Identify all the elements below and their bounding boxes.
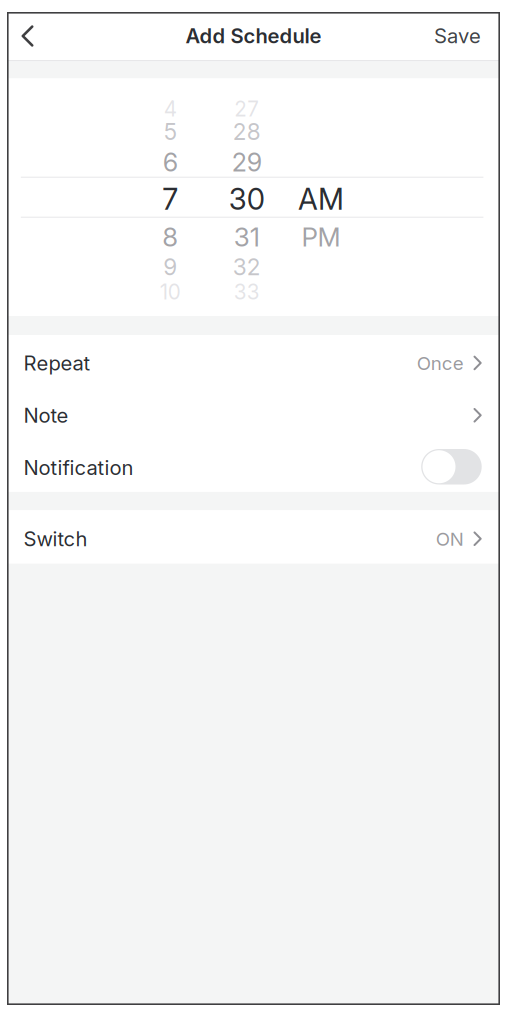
staticText: 27: [234, 96, 259, 121]
staticText: 33: [234, 279, 260, 304]
staticText: Note: [24, 403, 69, 428]
staticText: 5: [164, 118, 177, 145]
staticText: 10: [160, 279, 181, 304]
staticText: ON: [436, 528, 464, 550]
button[interactable]: Note: [7, 387, 500, 440]
staticText: AM: [298, 181, 344, 217]
staticText: 31: [234, 221, 260, 253]
button[interactable]: Back: [7, 12, 48, 60]
staticText: 28: [233, 118, 261, 145]
staticText: 8: [162, 221, 178, 253]
staticText: Notification: [24, 455, 134, 480]
staticText: 30: [229, 181, 265, 217]
staticText: Repeat: [24, 351, 91, 375]
staticText: 9: [163, 253, 177, 281]
button[interactable]: Repeat: [7, 335, 500, 387]
staticText: 32: [233, 253, 261, 281]
button[interactable]: Notification: [7, 440, 500, 492]
staticText: 7: [162, 181, 178, 217]
staticText: Add Schedule: [185, 24, 321, 48]
staticText: 4: [164, 96, 177, 121]
staticText: PM: [301, 221, 340, 253]
button[interactable]: Save: [434, 12, 500, 60]
staticText: Switch: [24, 527, 88, 551]
staticText: 6: [163, 147, 178, 178]
staticText: 29: [232, 147, 262, 178]
staticText: Save: [434, 24, 481, 48]
button[interactable]: Switch: [7, 510, 500, 564]
staticText: Once: [417, 352, 464, 374]
